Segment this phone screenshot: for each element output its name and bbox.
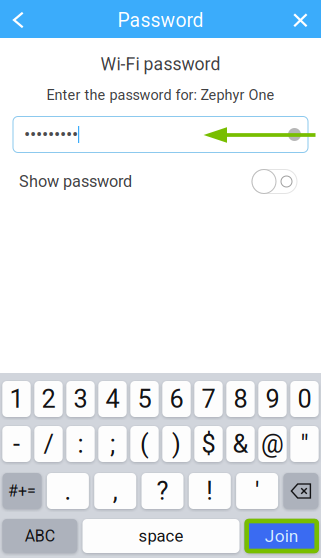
staticText: Show password — [19, 172, 132, 191]
button[interactable]: 3 — [66, 381, 95, 417]
button[interactable]: ; — [98, 426, 127, 462]
button[interactable]: . — [47, 473, 89, 509]
button[interactable]: Join — [245, 519, 319, 553]
button[interactable]: ' — [236, 473, 278, 509]
button[interactable]: 0 — [290, 381, 319, 417]
button[interactable]: - — [2, 426, 31, 462]
staticText: Enter the password for: Zephyr One — [46, 87, 274, 103]
button[interactable]: 4 — [98, 381, 127, 417]
button[interactable]: : — [66, 426, 95, 462]
button[interactable]: ( — [130, 426, 159, 462]
button[interactable]: Clear text — [288, 119, 308, 150]
staticText: ••••••••• — [24, 124, 78, 145]
button[interactable]: , — [94, 473, 136, 509]
staticText: $ — [201, 429, 215, 459]
staticText: #+= — [8, 482, 36, 500]
button[interactable]: 8 — [226, 381, 255, 417]
button[interactable]: @ — [258, 426, 287, 462]
staticText: , — [113, 476, 118, 506]
staticText: 5 — [137, 384, 151, 414]
button[interactable]: 9 — [258, 381, 287, 417]
button[interactable]: #+= — [3, 473, 42, 509]
button[interactable]: / — [34, 426, 63, 462]
staticText: Join — [265, 526, 299, 546]
staticText: Wi-Fi password — [100, 54, 220, 75]
button[interactable]: ) — [162, 426, 191, 462]
staticText: - — [13, 429, 20, 459]
button[interactable]: 2 — [34, 381, 63, 417]
staticText: ' — [255, 476, 259, 506]
button[interactable]: ABC — [2, 519, 77, 553]
staticText: 1 — [9, 384, 23, 414]
button[interactable]: 6 — [162, 381, 191, 417]
staticText: . — [64, 476, 71, 506]
staticText: ( — [140, 429, 149, 459]
staticText: ! — [206, 476, 213, 506]
button[interactable]: $ — [194, 426, 223, 462]
staticText: ABC — [25, 527, 55, 545]
staticText: 8 — [233, 384, 247, 414]
staticText: " — [300, 429, 308, 459]
staticText: ; — [110, 429, 115, 459]
button[interactable]: & — [226, 426, 255, 462]
staticText: 9 — [265, 384, 279, 414]
staticText: @ — [261, 429, 284, 459]
button[interactable]: 1 — [2, 381, 31, 417]
staticText: Password — [117, 9, 203, 32]
button[interactable]: Back — [0, 0, 37, 38]
staticText: : — [77, 429, 83, 459]
staticText: 3 — [73, 384, 87, 414]
staticText: ) — [172, 429, 181, 459]
staticText: & — [232, 429, 248, 459]
button[interactable]: 5 — [130, 381, 159, 417]
staticText: 0 — [297, 384, 311, 414]
staticText: 6 — [169, 384, 183, 414]
staticText: / — [43, 429, 53, 459]
button[interactable]: Delete — [283, 473, 318, 509]
button[interactable]: space — [82, 519, 239, 553]
button[interactable]: ! — [189, 473, 231, 509]
button[interactable]: " — [290, 426, 319, 462]
staticText: 2 — [41, 384, 55, 414]
staticText: 7 — [201, 384, 215, 414]
staticText: ? — [156, 476, 168, 506]
button[interactable]: Show password — [252, 169, 297, 193]
staticText: 4 — [105, 384, 119, 414]
button[interactable]: ? — [141, 473, 183, 509]
button[interactable]: Close — [281, 1, 321, 37]
staticText: space — [138, 526, 183, 546]
button[interactable]: 7 — [194, 381, 223, 417]
